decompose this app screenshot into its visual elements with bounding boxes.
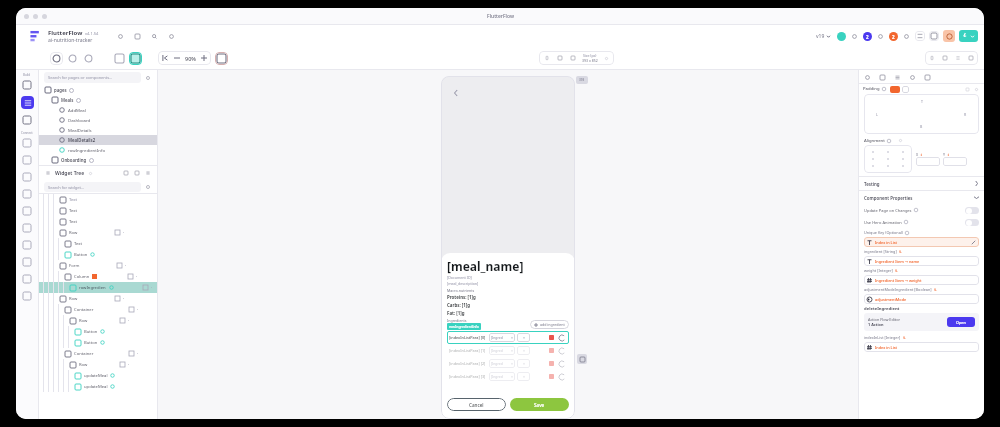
button[interactable]: MealDetails2 [39, 135, 157, 145]
button[interactable]: Phone [543, 54, 551, 62]
button[interactable]: Text [39, 205, 157, 216]
button[interactable]: Undo [558, 347, 565, 354]
button[interactable]: Theme [923, 73, 932, 82]
button[interactable]: Save [941, 54, 949, 62]
button[interactable]: Zoom out [173, 54, 181, 62]
button[interactable]: Create [21, 79, 33, 91]
button[interactable]: MealDetails [39, 125, 157, 135]
button[interactable]: Actions [878, 73, 887, 82]
button[interactable]: Row [39, 359, 157, 370]
button[interactable]: Text [39, 216, 157, 227]
button[interactable]: Delete ingredient [548, 360, 555, 367]
button[interactable]: Collections [21, 154, 33, 166]
button[interactable]: Status ok [837, 32, 846, 41]
button[interactable]: Index in List [864, 237, 979, 247]
button[interactable]: Text [954, 54, 962, 62]
button[interactable]: Integrations [21, 273, 33, 285]
button[interactable]: Layout badge [577, 354, 587, 364]
button[interactable]: Media [21, 205, 33, 217]
button[interactable]: Properties [863, 73, 872, 82]
button[interactable]: adjustmentMode [864, 294, 979, 304]
button[interactable]: Database [21, 137, 33, 149]
button[interactable]: Layout [967, 54, 975, 62]
button[interactable]: Cancel [447, 398, 506, 411]
button[interactable]: Lock [122, 169, 130, 177]
button[interactable]: Reset [973, 86, 980, 93]
button[interactable]: updateMeal [39, 381, 157, 392]
button[interactable]: Form [39, 260, 157, 271]
button[interactable]: Index in List [864, 342, 979, 352]
button[interactable]: Delete ingredient [548, 334, 555, 341]
button[interactable]: Ingredient Item → weight [864, 275, 979, 285]
button[interactable]: Dashboard [39, 115, 157, 125]
button[interactable]: AddMeal [39, 105, 157, 115]
button[interactable]: updateMeal [39, 370, 157, 381]
button[interactable]: Pages [21, 96, 34, 109]
button[interactable]: Tablet [556, 54, 564, 62]
button[interactable]: Responsive [129, 52, 142, 65]
button[interactable]: Delete ingredient [548, 373, 555, 380]
button[interactable]: Text [39, 194, 157, 205]
button[interactable]: Theme [82, 52, 95, 65]
button[interactable]: Run [959, 30, 978, 42]
button[interactable]: Row [39, 293, 157, 304]
button[interactable]: Ingredient Item → name [864, 256, 979, 266]
button[interactable] [916, 157, 940, 166]
button[interactable]: Size info [603, 55, 610, 62]
button[interactable]: Tests [21, 256, 33, 268]
button[interactable]: [indexInListPara] [3] [447, 370, 569, 383]
button[interactable]: Search for pages or components... [44, 72, 141, 83]
button[interactable]: rowIngredientInfo [39, 145, 157, 155]
button[interactable]: Components [21, 114, 33, 126]
button[interactable]: Individual padding [902, 86, 909, 93]
button[interactable]: Tree [44, 169, 52, 177]
button[interactable]: Options [144, 169, 152, 177]
button[interactable]: Undo [558, 373, 565, 380]
button[interactable]: Code [915, 31, 925, 41]
button[interactable]: Desktop [569, 54, 577, 62]
button[interactable]: Info [902, 32, 911, 41]
button[interactable]: Device frame [113, 52, 126, 65]
button[interactable]: Meals [39, 95, 157, 105]
button[interactable]: Refresh [850, 32, 859, 41]
button[interactable]: Alignment grid [864, 145, 912, 173]
button[interactable]: Button [39, 326, 157, 337]
button[interactable]: Reset alignment [897, 137, 904, 144]
button[interactable]: Search widget [144, 183, 152, 191]
button[interactable]: Copy [964, 86, 971, 93]
button[interactable]: Row [39, 227, 157, 238]
button[interactable]: Zoom in [200, 54, 208, 62]
button[interactable]: Shortcuts [133, 32, 142, 41]
button[interactable]: v19 [814, 33, 833, 40]
button[interactable]: Flows [21, 222, 33, 234]
button[interactable]: Grid [215, 52, 228, 65]
button[interactable]: Open [947, 317, 975, 327]
button[interactable]: Container [39, 304, 157, 315]
button[interactable]: Device badge [576, 76, 588, 84]
button[interactable]: Animations [908, 73, 917, 82]
button[interactable]: Backend [893, 73, 902, 82]
button[interactable]: Device [928, 54, 936, 62]
button[interactable]: add ingredient [530, 320, 569, 329]
button[interactable]: Action Flow Editor [864, 313, 979, 331]
button[interactable]: Settings [21, 290, 33, 302]
button[interactable]: Save [510, 398, 569, 411]
button[interactable]: Pan [66, 52, 79, 65]
button[interactable]: Search [144, 74, 152, 82]
button[interactable]: [indexInListPara] [0] [447, 331, 569, 344]
button[interactable]: Team [21, 188, 33, 200]
button[interactable]: Help [87, 170, 94, 177]
button[interactable]: Add [133, 169, 141, 177]
button[interactable]: Search [150, 32, 159, 41]
button[interactable]: Column [39, 271, 157, 282]
button[interactable]: Undo [558, 334, 565, 341]
button[interactable]: Update Page on Changes [859, 204, 984, 216]
button[interactable]: rowIngredientInfo [39, 282, 157, 293]
button[interactable]: Row [39, 315, 157, 326]
button[interactable]: Fit [161, 54, 169, 62]
button[interactable]: Link [167, 32, 176, 41]
button[interactable]: Warnings [889, 32, 898, 41]
button[interactable]: Open [929, 31, 939, 41]
button[interactable] [943, 157, 967, 166]
button[interactable]: Preview [943, 30, 955, 42]
